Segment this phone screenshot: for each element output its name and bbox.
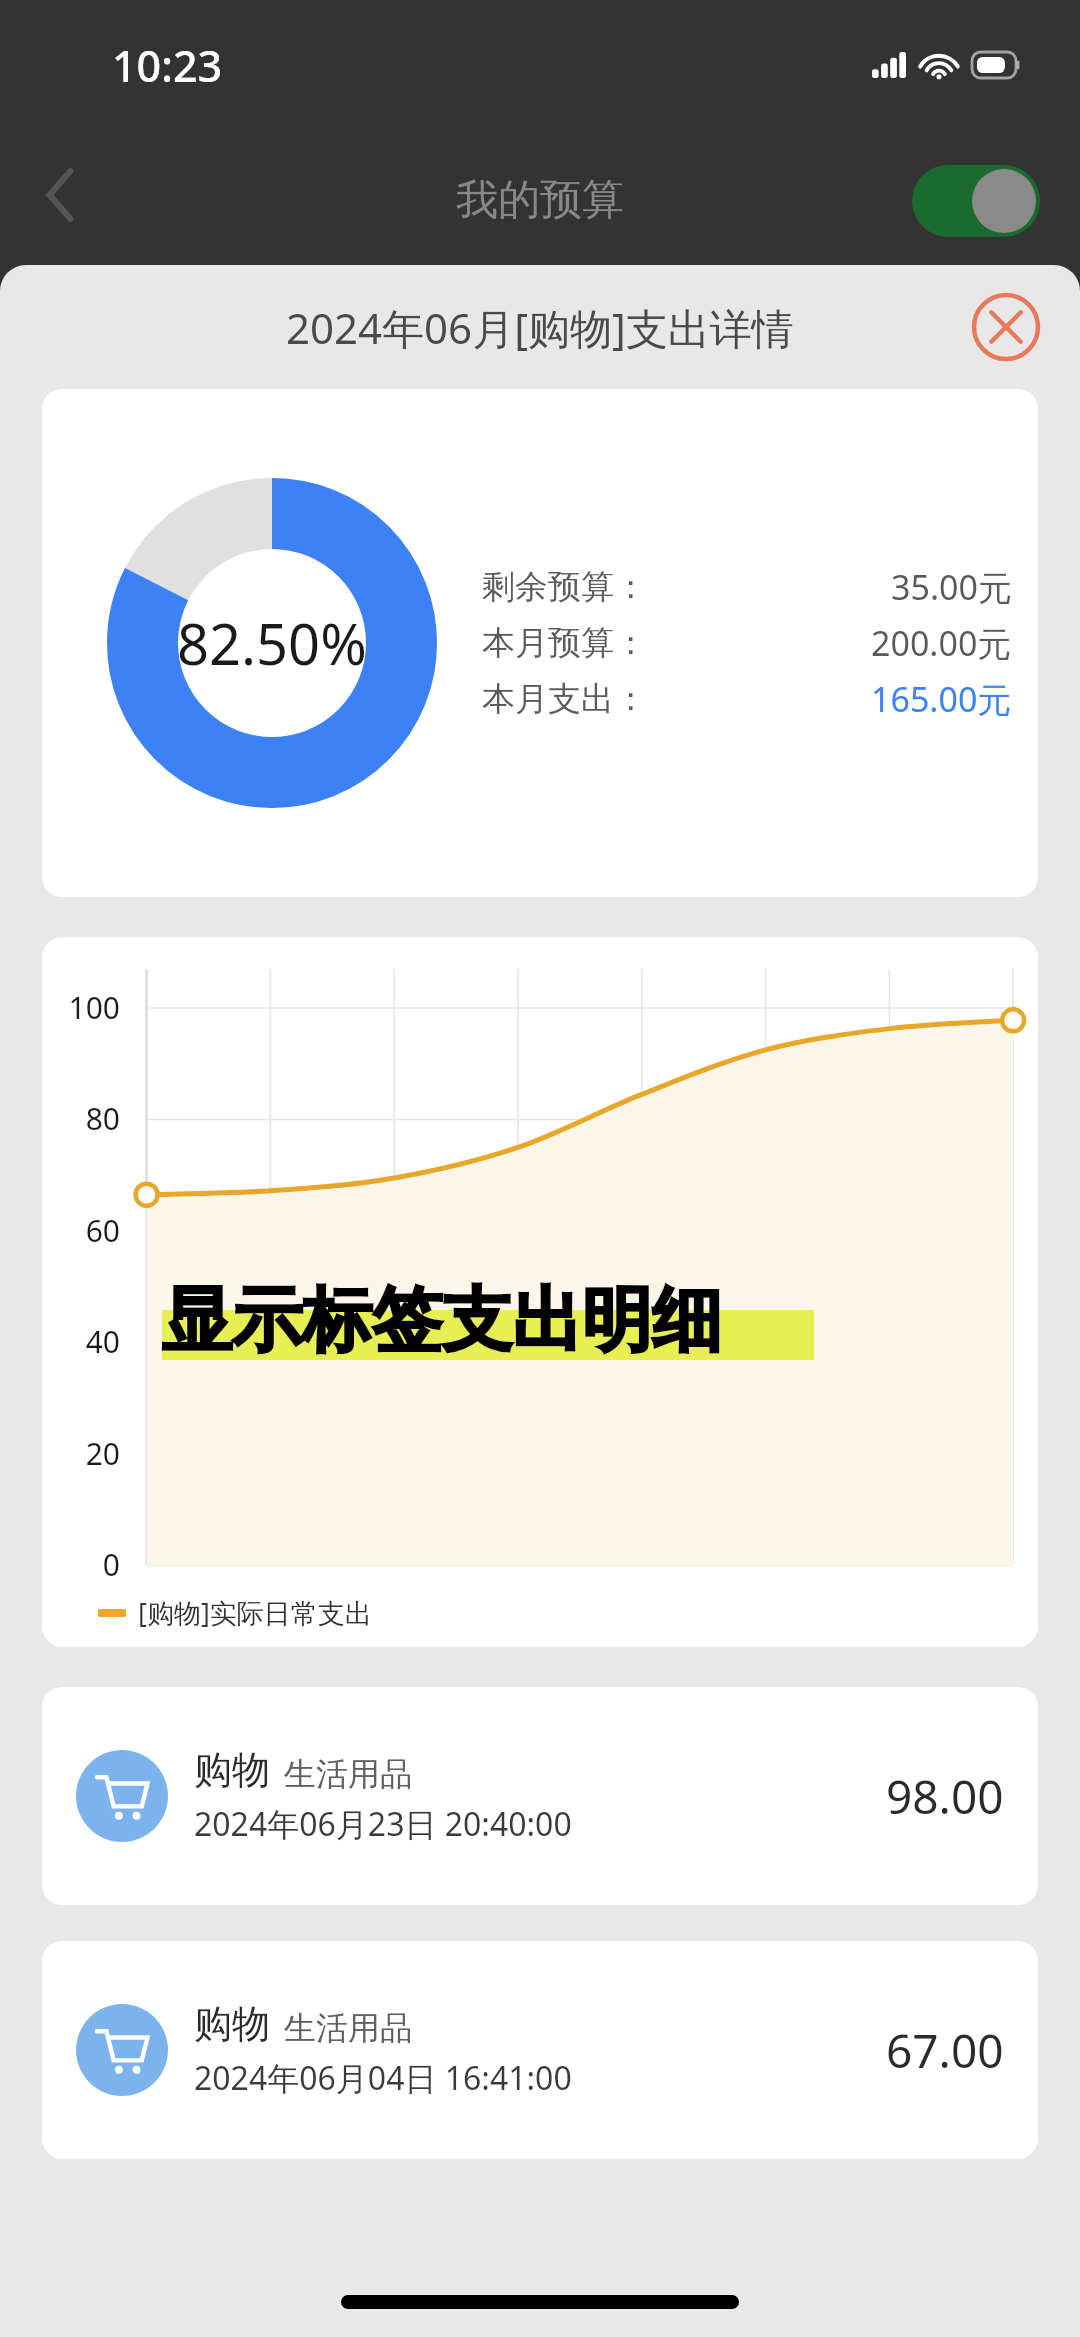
staticText: 165.00元 bbox=[871, 676, 1012, 722]
staticText: 40 bbox=[42, 1321, 120, 1362]
button[interactable]: Back bbox=[20, 155, 100, 235]
staticText: 生活用品 bbox=[284, 2008, 412, 2048]
staticText: 剩余预算： bbox=[482, 566, 647, 608]
staticText: 2024年06月04日 16:41:00 bbox=[194, 2056, 572, 2100]
staticText: 200.00元 bbox=[871, 620, 1012, 666]
staticText: 2024年06月23日 20:40:00 bbox=[194, 1802, 572, 1846]
staticText: 0 bbox=[42, 1544, 120, 1585]
staticText: 10:23 bbox=[112, 36, 223, 95]
staticText: 显示标签支出明细 bbox=[162, 1277, 722, 1365]
staticText: 98.00 bbox=[886, 1765, 1004, 1828]
button[interactable]: 82.50% bbox=[42, 389, 1038, 897]
staticText: 本月支出： bbox=[482, 678, 647, 720]
button[interactable]: 购物 bbox=[42, 1687, 1038, 1905]
staticText: [购物]实际日常支出 bbox=[138, 1594, 372, 1631]
staticText: 20 bbox=[42, 1433, 120, 1474]
staticText: 67.00 bbox=[886, 2019, 1004, 2082]
staticText: 购物 bbox=[194, 2000, 270, 2048]
staticText: 60 bbox=[42, 1210, 120, 1251]
staticText: 100 bbox=[42, 987, 120, 1028]
button[interactable]: 100 bbox=[42, 937, 1038, 1647]
button[interactable]: Toggle bbox=[912, 165, 1040, 237]
staticText: 本月预算： bbox=[482, 622, 647, 664]
button[interactable]: 购物 bbox=[42, 1941, 1038, 2159]
staticText: 35.00元 bbox=[891, 564, 1012, 610]
button[interactable]: Close bbox=[972, 293, 1040, 361]
staticText: 生活用品 bbox=[284, 1754, 412, 1794]
staticText: 82.50% bbox=[177, 605, 367, 681]
staticText: 80 bbox=[42, 1098, 120, 1139]
staticText: 购物 bbox=[194, 1746, 270, 1794]
staticText: 2024年06月[购物]支出详情 bbox=[286, 299, 794, 356]
staticText: 我的预算 bbox=[456, 174, 624, 227]
